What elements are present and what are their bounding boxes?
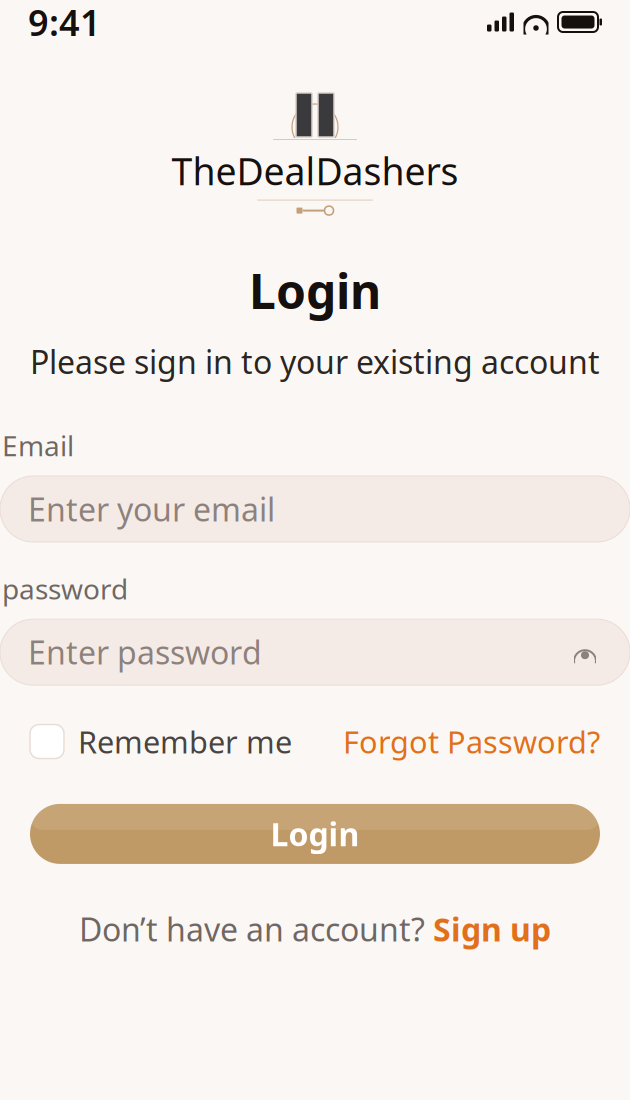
button[interactable]: Login (30, 804, 600, 864)
button[interactable]: Forgot Password? (343, 721, 600, 762)
button[interactable]: Don’t have an account? (79, 908, 551, 950)
staticText: Forgot Password? (343, 721, 600, 762)
button[interactable]: Remember me (30, 721, 292, 762)
staticText: Sign up (433, 908, 551, 950)
staticText: Enter your email (28, 488, 275, 530)
staticText: Remember me (78, 721, 292, 762)
staticText: Login (249, 259, 381, 322)
staticText: TheDealDashers (171, 146, 458, 196)
staticText: 9:41 (28, 0, 101, 46)
staticText: password (2, 570, 128, 607)
staticText: Login (270, 813, 359, 855)
button[interactable]: Show password (568, 639, 602, 665)
staticText: Don’t have an account? (79, 908, 425, 950)
staticText: Please sign in to your existing account (30, 340, 600, 383)
staticText: Email (2, 427, 74, 464)
staticText: Enter password (28, 631, 262, 673)
